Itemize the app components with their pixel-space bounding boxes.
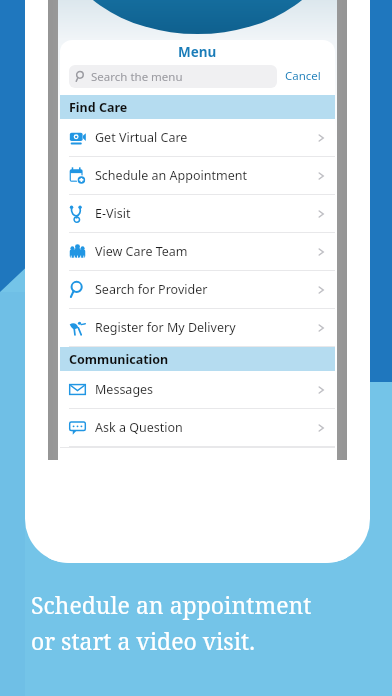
staticText: View Care Team: [95, 243, 188, 260]
staticText: E-Visit: [95, 205, 131, 222]
staticText: Register for My Delivery: [95, 319, 236, 336]
button[interactable]: View Care Team: [60, 233, 335, 271]
button[interactable]: Search the menu: [69, 65, 277, 88]
staticText: Menu: [178, 43, 217, 61]
other: Open E-Visit: [316, 209, 326, 219]
button[interactable]: E-Visit: [60, 195, 335, 233]
other: Open Register for My Delivery: [316, 323, 326, 333]
staticText: Get Virtual Care: [95, 129, 188, 146]
staticText: Cancel: [285, 68, 321, 84]
button[interactable]: Ask a Question: [60, 409, 335, 447]
other: Open Ask a Question: [316, 423, 326, 433]
staticText: Search for Provider: [95, 281, 208, 298]
staticText: Ask a Question: [95, 419, 183, 436]
staticText: Schedule an Appointment: [95, 167, 247, 184]
other: Open Schedule an Appointment: [316, 171, 326, 181]
other: Open Search for Provider: [316, 285, 326, 295]
staticText: Search the menu: [91, 69, 183, 85]
button[interactable]: Cancel: [277, 63, 329, 89]
other: Open View Care Team: [316, 247, 326, 257]
staticText: Messages: [95, 381, 154, 398]
staticText: Find Care: [69, 99, 128, 116]
button[interactable]: Messages: [60, 371, 335, 409]
button[interactable]: Search for Provider: [60, 271, 335, 309]
other: Open Messages: [316, 385, 326, 395]
staticText: Communication: [69, 351, 169, 368]
staticText: Schedule an appointment: [31, 589, 312, 620]
other: Open Get Virtual Care: [316, 133, 326, 143]
button[interactable]: Get Virtual Care: [60, 119, 335, 157]
button[interactable]: Register for My Delivery: [60, 309, 335, 347]
staticText: or start a video visit.: [31, 625, 255, 656]
button[interactable]: Schedule an Appointment: [60, 157, 335, 195]
